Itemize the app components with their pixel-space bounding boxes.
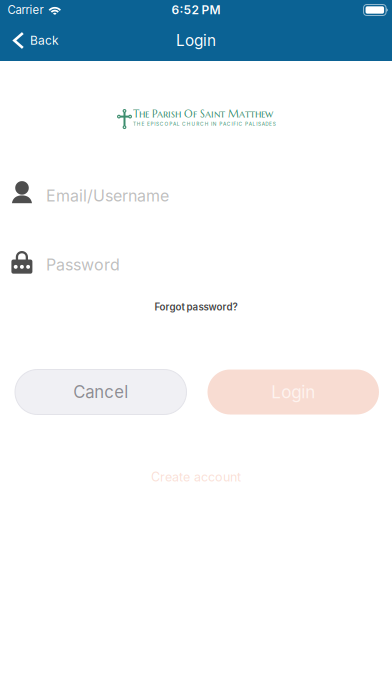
button[interactable]: Login xyxy=(207,369,379,414)
staticText: Back xyxy=(30,33,59,48)
staticText: The Parish Of Saint Matthew xyxy=(133,107,273,120)
staticText: Create account xyxy=(151,469,241,485)
staticText: Password xyxy=(46,255,120,274)
staticText: 6:52 PM xyxy=(171,3,220,17)
staticText: Cancel xyxy=(73,382,128,402)
button[interactable]: Forgot password? xyxy=(0,298,392,316)
staticText: Carrier xyxy=(7,3,43,17)
staticText: Login xyxy=(271,382,315,402)
staticText: Forgot password? xyxy=(154,301,237,313)
button[interactable]: Create account xyxy=(0,468,392,486)
button[interactable]: Back xyxy=(0,20,71,61)
staticText: Email/Username xyxy=(46,186,169,205)
staticText: THE EPISCOPAL CHURCH IN PACIFIC PALISADE… xyxy=(133,121,276,127)
staticText: Login xyxy=(176,31,216,50)
button[interactable]: Cancel xyxy=(15,369,186,414)
